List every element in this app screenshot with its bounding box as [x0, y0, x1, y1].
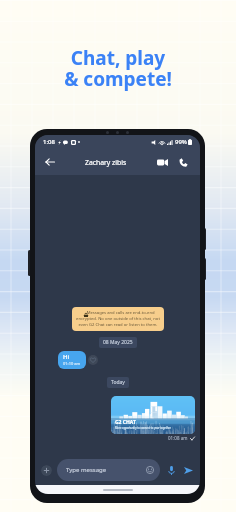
- staticText: 99%: [175, 138, 187, 146]
- staticText: G2 CHAT: [115, 419, 136, 426]
- button[interactable]: Messages and calls are end-to-end encryp…: [72, 307, 164, 331]
- staticText: Zachary zibis: [85, 158, 127, 167]
- button[interactable]: G2 CHAT: [111, 396, 195, 434]
- staticText: 01:10 am: [63, 361, 81, 366]
- staticText: Today: [111, 379, 125, 386]
- button[interactable]: Type message: [57, 459, 160, 481]
- staticText: Type message: [66, 466, 107, 474]
- button[interactable]: 08 May 2025: [99, 337, 137, 348]
- button[interactable]: Attach: [41, 465, 52, 476]
- staticText: Messages and calls are end-to-end encryp…: [76, 310, 160, 328]
- button[interactable]: Video call: [155, 155, 169, 169]
- button[interactable]: Voice message: [165, 464, 177, 476]
- button[interactable]: Hi: [58, 351, 86, 369]
- button[interactable]: Back: [43, 155, 57, 169]
- staticText: 1:08: [43, 138, 55, 146]
- button[interactable]: Voice call: [176, 155, 190, 169]
- staticText: More opportunity to connect to your toge…: [115, 426, 171, 430]
- staticText: Hi: [63, 353, 70, 361]
- staticText: 08 May 2025: [103, 339, 133, 346]
- button[interactable]: Today: [107, 377, 129, 388]
- button[interactable]: Send: [182, 464, 194, 476]
- staticText: Chat, play & compete!: [0, 45, 236, 92]
- staticText: 01:08 am: [168, 435, 188, 441]
